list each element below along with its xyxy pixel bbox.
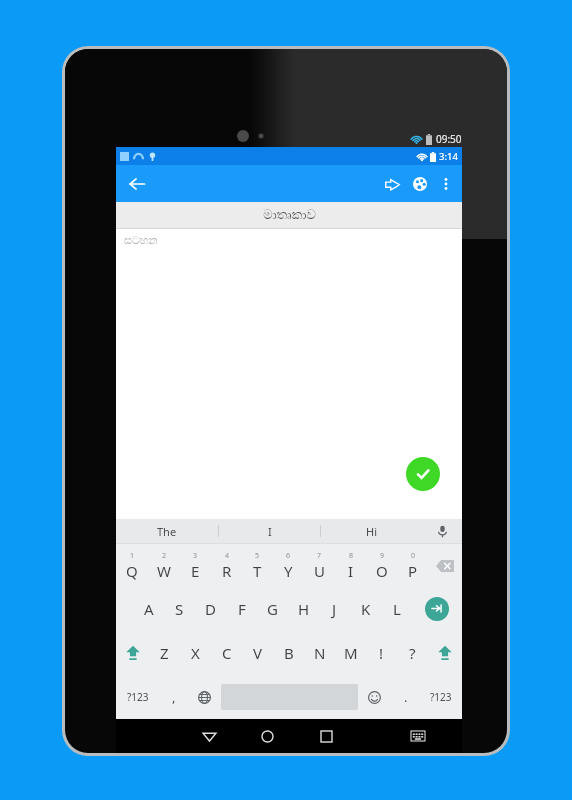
staticText: ! — [379, 643, 384, 663]
staticText: Q — [126, 561, 138, 581]
button[interactable]: More options — [434, 172, 458, 196]
staticText: B — [284, 643, 294, 663]
button[interactable]: F — [226, 587, 257, 631]
button[interactable]: L — [381, 587, 412, 631]
button[interactable]: 1 — [116, 544, 148, 587]
staticText: X — [191, 643, 200, 663]
staticText: 2 — [162, 551, 167, 561]
staticText: D — [205, 599, 216, 619]
button[interactable]: 4 — [211, 544, 242, 587]
button[interactable]: B — [273, 631, 304, 675]
button[interactable]: 8 — [335, 544, 366, 587]
button[interactable]: 2 — [148, 544, 180, 587]
button[interactable]: 9 — [366, 544, 397, 587]
button[interactable]: , — [159, 675, 188, 719]
staticText: , — [172, 688, 176, 706]
button[interactable]: G — [257, 587, 288, 631]
button[interactable]: Backspace — [428, 544, 462, 587]
button[interactable]: 3 — [180, 544, 211, 587]
button[interactable]: Emoji — [358, 675, 391, 719]
button[interactable]: A — [133, 587, 164, 631]
staticText: . — [404, 688, 408, 706]
staticText: I — [268, 524, 272, 539]
staticText: P — [408, 561, 418, 581]
button[interactable]: The — [116, 519, 218, 543]
staticText: 09:50 — [436, 132, 462, 146]
button[interactable]: ?123 — [116, 675, 159, 719]
button[interactable]: . — [391, 675, 420, 719]
button[interactable]: ?123 — [420, 675, 462, 719]
button[interactable]: Save note — [406, 457, 440, 491]
button[interactable]: Back — [122, 169, 152, 199]
button[interactable]: J — [319, 587, 350, 631]
staticText: R — [222, 561, 232, 581]
staticText: W — [157, 561, 171, 581]
button[interactable]: Palette — [406, 170, 434, 198]
button[interactable]: 0 — [397, 544, 428, 587]
button[interactable]: H — [288, 587, 319, 631]
button[interactable]: 7 — [304, 544, 335, 587]
staticText: M — [344, 643, 358, 663]
button[interactable]: D — [195, 587, 226, 631]
staticText: Z — [160, 643, 169, 663]
staticText: සටහන — [124, 235, 158, 246]
staticText: 3 — [193, 551, 198, 561]
staticText: 4 — [225, 551, 230, 561]
staticText: T — [253, 561, 262, 581]
button[interactable]: Enter — [412, 587, 462, 631]
staticText: 7 — [317, 551, 322, 561]
staticText: මාතෘකාව — [263, 209, 316, 222]
staticText: O — [376, 561, 388, 581]
staticText: ? — [409, 643, 416, 663]
button[interactable]: ! — [366, 631, 397, 675]
button[interactable]: Pointer — [378, 170, 406, 198]
staticText: 5 — [255, 551, 260, 561]
button[interactable]: Back — [180, 719, 238, 753]
staticText: 6 — [286, 551, 291, 561]
staticText: H — [298, 599, 310, 619]
staticText: E — [191, 561, 200, 581]
staticText: A — [144, 599, 154, 619]
button[interactable]: Change language — [188, 675, 221, 719]
button[interactable]: I — [219, 519, 320, 543]
button[interactable]: ? — [397, 631, 428, 675]
button[interactable]: Recents — [297, 719, 356, 753]
staticText: ?123 — [430, 690, 452, 704]
staticText: G — [267, 599, 278, 619]
staticText: V — [253, 643, 263, 663]
staticText: Y — [284, 561, 293, 581]
staticText: 0 — [411, 551, 416, 561]
button[interactable]: මාතෘකාව — [116, 202, 462, 228]
button[interactable]: V — [242, 631, 273, 675]
staticText: L — [393, 599, 401, 619]
button[interactable]: Switch keyboard — [388, 719, 447, 753]
staticText: F — [238, 599, 246, 619]
staticText: C — [222, 643, 232, 663]
button[interactable]: M — [335, 631, 366, 675]
button[interactable]: සටහන — [116, 229, 462, 519]
staticText: I — [348, 561, 354, 581]
staticText: K — [361, 599, 371, 619]
staticText: 1 — [130, 551, 135, 561]
staticText: N — [314, 643, 326, 663]
button[interactable]: 6 — [273, 544, 304, 587]
button[interactable]: Home — [238, 719, 297, 753]
button[interactable]: Hi — [321, 519, 422, 543]
staticText: 3:14 — [439, 150, 458, 163]
button[interactable]: Shift — [116, 631, 149, 675]
button[interactable]: K — [350, 587, 381, 631]
button[interactable]: Z — [149, 631, 180, 675]
button[interactable]: Shift — [428, 631, 462, 675]
staticText: S — [175, 599, 184, 619]
button[interactable]: C — [211, 631, 242, 675]
button[interactable]: Voice input — [422, 519, 462, 543]
staticText: 8 — [349, 551, 354, 561]
staticText: ?123 — [127, 690, 149, 704]
button[interactable]: S — [164, 587, 195, 631]
button[interactable]: N — [304, 631, 335, 675]
staticText: U — [314, 561, 325, 581]
button[interactable]: 5 — [242, 544, 273, 587]
staticText: Hi — [366, 524, 377, 539]
button[interactable]: X — [180, 631, 211, 675]
